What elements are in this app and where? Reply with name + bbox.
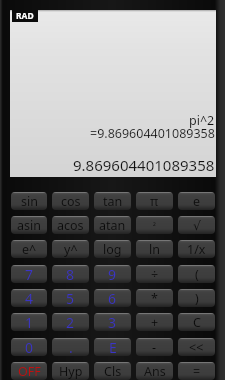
staticText: √ xyxy=(193,218,201,233)
button[interactable]: 1/x xyxy=(178,240,215,258)
staticText: ( xyxy=(195,266,199,283)
staticText: e xyxy=(193,193,201,210)
button[interactable]: << xyxy=(178,338,215,356)
button[interactable]: ) xyxy=(178,289,215,307)
staticText: sin xyxy=(21,193,38,210)
staticText: OFF xyxy=(18,363,41,380)
button[interactable]: 3 xyxy=(94,313,131,331)
button[interactable]: Ans xyxy=(136,362,173,380)
staticText: . xyxy=(69,338,73,356)
button[interactable]: 1 xyxy=(11,313,47,331)
staticText: - xyxy=(152,339,157,356)
staticText: 0 xyxy=(25,338,34,356)
button[interactable]: * xyxy=(136,289,173,307)
staticText: Cls xyxy=(104,363,122,380)
staticText: pi^2 xyxy=(189,112,215,129)
button[interactable]: 4 xyxy=(11,289,47,307)
staticText: acos xyxy=(57,217,84,234)
button[interactable]: log xyxy=(94,240,131,258)
button[interactable]: OFF xyxy=(11,362,47,380)
button[interactable]: √ xyxy=(178,216,215,234)
staticText: = xyxy=(193,363,201,380)
button[interactable]: tan xyxy=(94,192,131,210)
staticText: Hyp xyxy=(59,363,83,380)
button[interactable]: 7 xyxy=(11,265,47,283)
button[interactable]: 0 xyxy=(11,338,47,356)
button[interactable]: 8 xyxy=(52,265,89,283)
staticText: << xyxy=(189,339,204,356)
staticText: + xyxy=(151,314,159,331)
button[interactable]: E xyxy=(94,338,131,356)
button[interactable]: 5 xyxy=(52,289,89,307)
staticText: ln xyxy=(149,241,160,258)
button[interactable]: . xyxy=(52,338,89,356)
button[interactable]: y^ xyxy=(52,240,89,258)
staticText: e^ xyxy=(22,241,37,258)
button[interactable]: + xyxy=(136,313,173,331)
button[interactable]: cos xyxy=(52,192,89,210)
staticText: log xyxy=(103,241,122,258)
staticText: Ans xyxy=(144,363,166,380)
staticText: C xyxy=(193,314,201,331)
button[interactable]: ÷ xyxy=(136,265,173,283)
staticText: * xyxy=(151,290,158,307)
button[interactable]: e xyxy=(178,192,215,210)
staticText: y^ xyxy=(64,241,78,258)
button[interactable]: 2 xyxy=(52,313,89,331)
staticText: E xyxy=(109,338,117,356)
staticText: asin xyxy=(17,217,41,234)
staticText: 1/x xyxy=(187,241,206,258)
button[interactable]: asin xyxy=(11,216,47,234)
button[interactable]: e^ xyxy=(11,240,47,258)
button[interactable]: 6 xyxy=(94,289,131,307)
staticText: RAD xyxy=(16,10,34,22)
staticText: 3 xyxy=(108,313,117,331)
button[interactable]: RAD xyxy=(12,10,38,22)
button[interactable]: ² xyxy=(136,216,173,234)
staticText: 4 xyxy=(25,289,34,307)
staticText: ÷ xyxy=(151,266,159,283)
button[interactable]: = xyxy=(178,362,215,380)
button[interactable]: ln xyxy=(136,240,173,258)
button[interactable]: - xyxy=(136,338,173,356)
staticText: 8 xyxy=(66,265,75,283)
staticText: 9.869604401089358 xyxy=(73,155,215,175)
button[interactable]: C xyxy=(178,313,215,331)
staticText: 2 xyxy=(66,313,75,331)
staticText: 7 xyxy=(25,265,34,283)
staticText: π xyxy=(150,193,159,210)
staticText: atan xyxy=(99,217,126,234)
staticText: tan xyxy=(103,193,123,210)
staticText: 9 xyxy=(108,265,117,283)
button[interactable]: acos xyxy=(52,216,89,234)
staticText: 1 xyxy=(25,313,34,331)
staticText: ² xyxy=(153,220,156,231)
button[interactable]: 9 xyxy=(94,265,131,283)
button[interactable]: ( xyxy=(178,265,215,283)
staticText: cos xyxy=(61,193,81,210)
button[interactable]: Cls xyxy=(94,362,131,380)
button[interactable]: sin xyxy=(11,192,47,210)
staticText: ) xyxy=(195,290,199,307)
button[interactable]: π xyxy=(136,192,173,210)
button[interactable]: Hyp xyxy=(52,362,89,380)
staticText: 6 xyxy=(108,289,117,307)
staticText: =9.869604401089358 xyxy=(90,125,215,142)
button[interactable]: atan xyxy=(94,216,131,234)
staticText: 5 xyxy=(66,289,75,307)
